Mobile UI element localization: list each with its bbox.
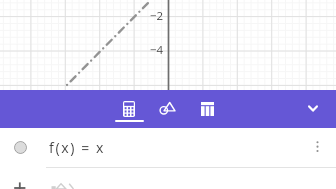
- button[interactable]: Tools: [149, 90, 187, 128]
- staticText: f(x) = x: [49, 138, 106, 157]
- button[interactable]: Calculator: [110, 90, 148, 128]
- button[interactable]: Table: [188, 90, 226, 128]
- button[interactable]: [0, 167, 336, 189]
- staticText: −2: [150, 8, 164, 24]
- staticText: −4: [150, 42, 164, 58]
- button[interactable]: Collapse panel: [295, 89, 331, 127]
- button[interactable]: f(x) = x: [0, 128, 336, 166]
- button[interactable]: More options: [301, 131, 333, 163]
